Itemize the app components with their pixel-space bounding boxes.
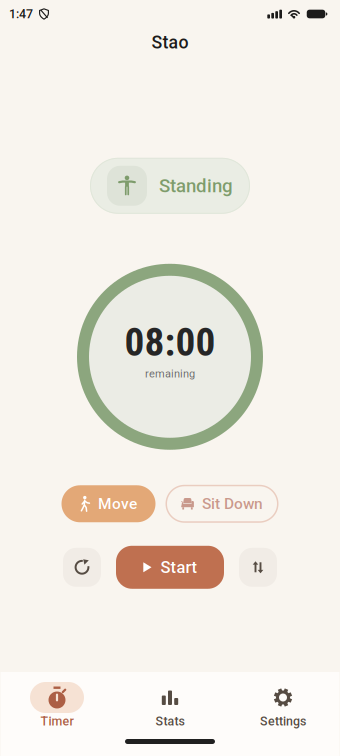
staticText: Start bbox=[160, 558, 197, 577]
button[interactable]: Move bbox=[61, 485, 155, 522]
staticText: 1:47 bbox=[9, 7, 33, 21]
button[interactable]: Sit Down bbox=[165, 485, 278, 523]
staticText: Stao bbox=[151, 32, 188, 53]
button[interactable]: Standing bbox=[90, 158, 250, 214]
staticText: Settings bbox=[260, 714, 306, 728]
staticText: remaining bbox=[145, 367, 195, 380]
button[interactable]: Swap timers bbox=[239, 548, 277, 587]
button[interactable]: Stats bbox=[113, 682, 226, 728]
staticText: Timer bbox=[40, 714, 73, 728]
button[interactable]: Start bbox=[116, 546, 224, 589]
staticText: Standing bbox=[159, 175, 233, 197]
staticText: Stats bbox=[155, 714, 184, 728]
button[interactable]: Timer bbox=[0, 682, 113, 728]
staticText: Sit Down bbox=[202, 495, 263, 513]
staticText: Move bbox=[98, 495, 137, 513]
button[interactable]: Reset bbox=[63, 548, 101, 587]
button[interactable]: Settings bbox=[226, 682, 339, 728]
staticText: 08:00 bbox=[124, 319, 215, 365]
